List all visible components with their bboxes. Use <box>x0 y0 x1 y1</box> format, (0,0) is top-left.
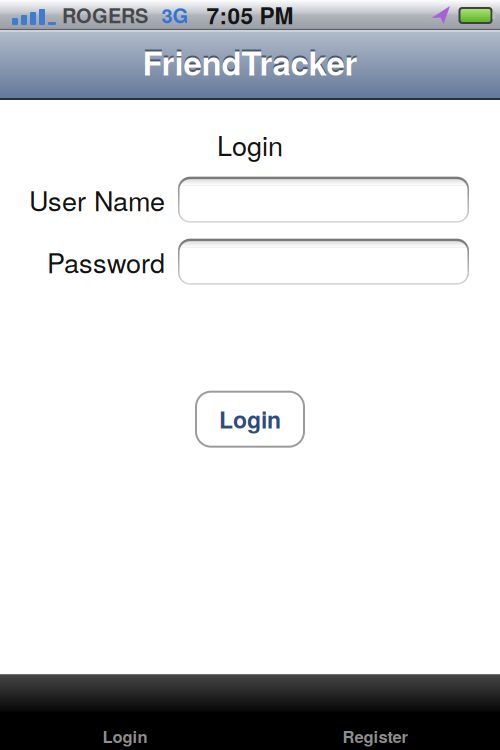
button[interactable]: Password text field <box>178 239 469 285</box>
staticText: ROGERS <box>62 1 148 29</box>
staticText: Login <box>102 724 147 748</box>
staticText: FriendTracker <box>142 38 357 86</box>
staticText: Password <box>47 242 165 281</box>
staticText: Login <box>219 403 281 436</box>
staticText: User Name <box>29 180 165 219</box>
staticText: FriendTracker <box>142 36 357 84</box>
staticText: 7:05 PM <box>206 0 293 31</box>
button[interactable]: Login <box>196 392 304 447</box>
button[interactable]: User Name text field <box>178 177 469 223</box>
staticText: 3G <box>161 1 188 29</box>
button[interactable]: Login <box>0 674 250 750</box>
button[interactable]: Register <box>250 674 500 750</box>
staticText: Register <box>342 724 407 748</box>
staticText: Login <box>217 125 283 164</box>
